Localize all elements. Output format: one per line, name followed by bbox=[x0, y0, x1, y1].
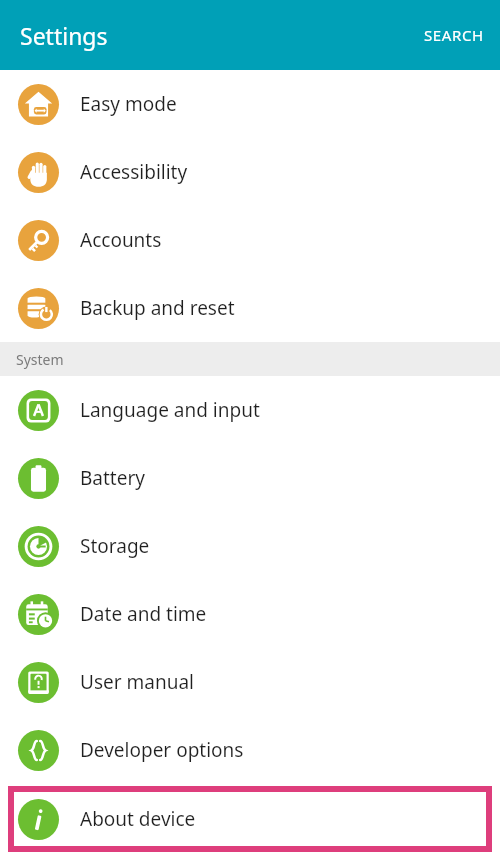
button[interactable]: Easy mode bbox=[0, 70, 500, 138]
button[interactable]: User manual bbox=[0, 648, 500, 716]
staticText: Backup and reset bbox=[80, 295, 235, 321]
button[interactable]: Battery bbox=[0, 444, 500, 512]
staticText: System bbox=[16, 350, 64, 369]
button[interactable]: Date and time bbox=[0, 580, 500, 648]
staticText: Developer options bbox=[80, 737, 244, 763]
staticText: Date and time bbox=[80, 601, 207, 627]
button[interactable]: Accounts bbox=[0, 206, 500, 274]
staticText: SEARCH bbox=[424, 25, 484, 45]
staticText: Accounts bbox=[80, 227, 162, 253]
button[interactable]: Backup and reset bbox=[0, 274, 500, 342]
staticText: Storage bbox=[80, 533, 150, 559]
staticText: Easy mode bbox=[80, 91, 177, 117]
button[interactable]: Language and input bbox=[0, 376, 500, 444]
button[interactable]: Developer options bbox=[0, 716, 500, 784]
staticText: Battery bbox=[80, 465, 145, 491]
button[interactable]: Storage bbox=[0, 512, 500, 580]
button[interactable]: SEARCH bbox=[408, 15, 500, 55]
staticText: Accessibility bbox=[80, 159, 188, 185]
staticText: User manual bbox=[80, 669, 194, 695]
button[interactable]: Accessibility bbox=[0, 138, 500, 206]
staticText: About device bbox=[80, 806, 196, 832]
staticText: Settings bbox=[20, 20, 108, 51]
button[interactable]: About device bbox=[8, 786, 492, 852]
staticText: Language and input bbox=[80, 397, 260, 423]
